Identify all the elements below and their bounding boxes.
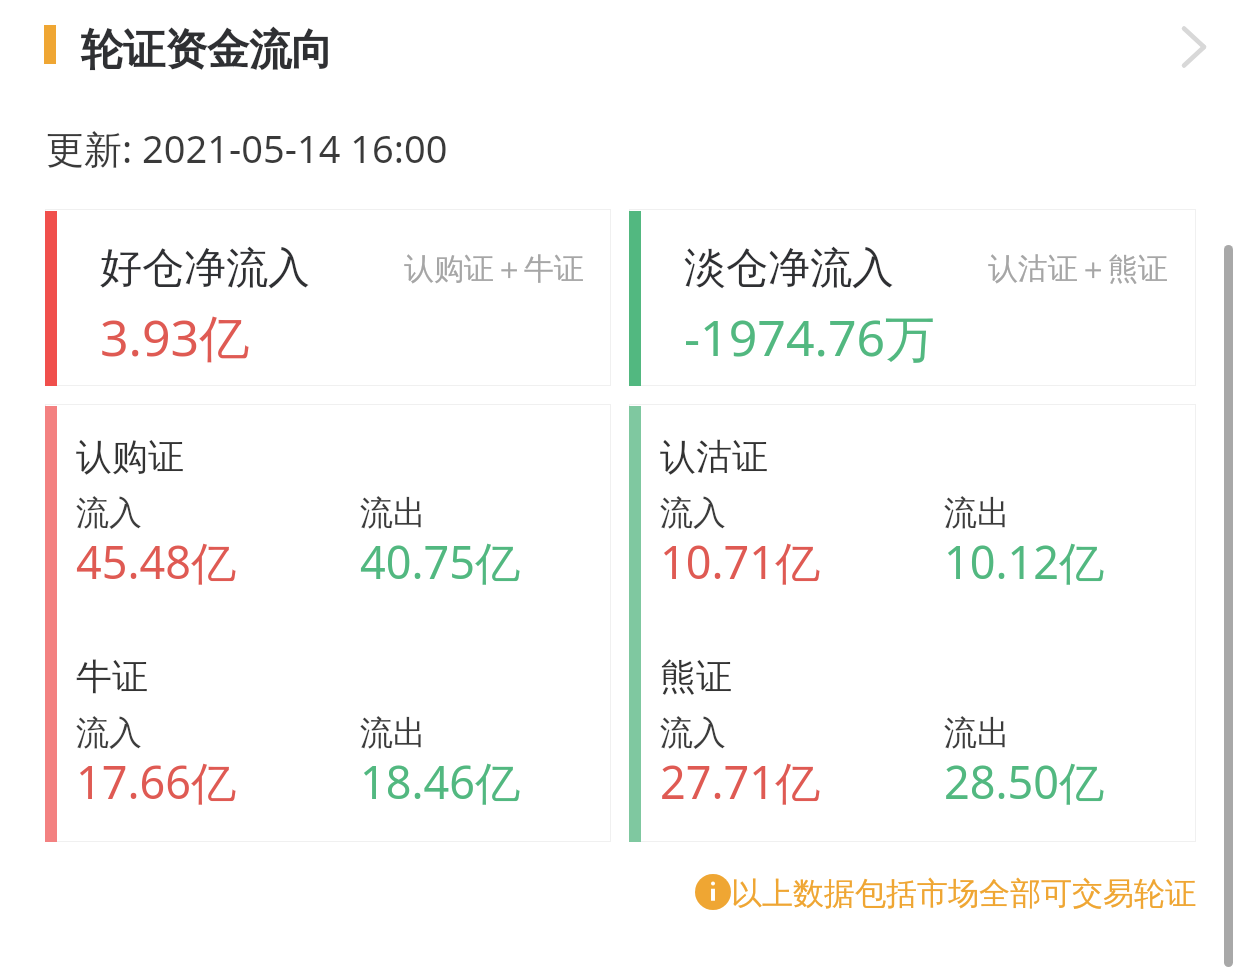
staticText: 40.75亿 <box>360 531 521 592</box>
staticText: 流入 <box>660 712 726 754</box>
staticText: 27.71亿 <box>660 751 821 812</box>
button[interactable]: More <box>1158 11 1230 83</box>
staticText: 45.48亿 <box>76 531 237 592</box>
staticText: 流出 <box>360 712 426 754</box>
staticText: 流出 <box>360 492 426 534</box>
staticText: 牛证 <box>76 654 148 699</box>
staticText: 10.71亿 <box>660 531 821 592</box>
button[interactable]: 认购证 <box>45 404 611 842</box>
staticText: 熊证 <box>660 654 732 699</box>
staticText: 轮证资金流向 <box>81 24 333 77</box>
staticText: 18.46亿 <box>360 751 521 812</box>
staticText: 流出 <box>944 712 1010 754</box>
staticText: 认沽证 <box>660 434 768 479</box>
staticText: 流出 <box>944 492 1010 534</box>
button[interactable]: 轮证资金流向 <box>0 0 1158 94</box>
button[interactable]: 淡仓净流入 <box>629 209 1196 386</box>
staticText: 以上数据包括市场全部可交易轮证 <box>731 874 1196 913</box>
button[interactable]: 认沽证 <box>629 404 1196 842</box>
staticText: 认沽证＋熊证 <box>988 250 1168 288</box>
staticText: 3.93亿 <box>100 303 250 371</box>
staticText: 流入 <box>76 712 142 754</box>
staticText: 更新: 2021-05-14 16:00 <box>46 122 448 174</box>
staticText: 流入 <box>660 492 726 534</box>
staticText: 流入 <box>76 492 142 534</box>
staticText: 淡仓净流入 <box>684 242 894 295</box>
staticText: 10.12亿 <box>944 531 1105 592</box>
staticText: 17.66亿 <box>76 751 237 812</box>
staticText: 好仓净流入 <box>100 242 310 295</box>
button[interactable]: 好仓净流入 <box>45 209 611 386</box>
staticText: -1974.76万 <box>684 303 936 371</box>
staticText: 28.50亿 <box>944 751 1105 812</box>
staticText: 认购证 <box>76 434 184 479</box>
staticText: 认购证＋牛证 <box>404 250 584 288</box>
button[interactable]: 以上数据包括市场全部可交易轮证 <box>695 874 1196 913</box>
